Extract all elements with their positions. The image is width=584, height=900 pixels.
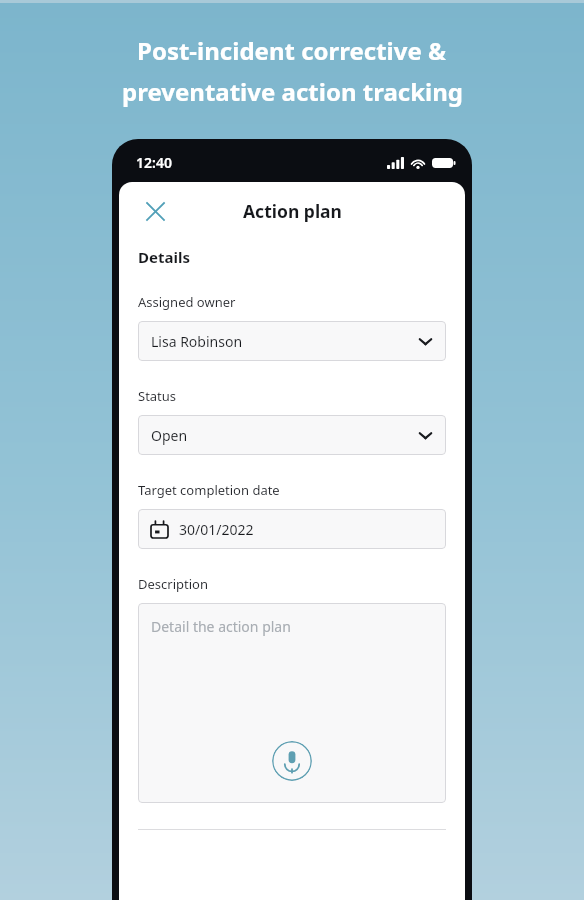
button[interactable]: 30/01/2022 <box>138 509 446 549</box>
staticText: Target completion date <box>138 481 280 499</box>
staticText: 30/01/2022 <box>179 520 254 539</box>
staticText: Details <box>138 247 190 267</box>
staticText: Description <box>138 575 208 593</box>
staticText: preventative action tracking <box>122 75 463 108</box>
staticText: Detail the action plan <box>151 617 291 636</box>
button[interactable]: Open <box>138 415 446 455</box>
staticText: Open <box>151 426 188 445</box>
button[interactable]: Voice input <box>272 741 312 781</box>
staticText: Action plan <box>243 199 342 223</box>
staticText: 12:40 <box>136 153 172 172</box>
button[interactable]: Detail the action plan <box>138 603 446 803</box>
staticText: Post-incident corrective & <box>137 34 447 67</box>
button[interactable]: Close <box>133 189 177 233</box>
staticText: Lisa Robinson <box>151 332 243 351</box>
button[interactable]: Lisa Robinson <box>138 321 446 361</box>
staticText: Assigned owner <box>138 293 236 311</box>
staticText: Status <box>138 387 177 405</box>
